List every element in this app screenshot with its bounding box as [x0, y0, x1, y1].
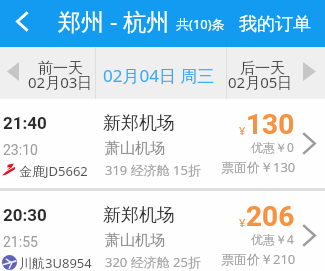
- button[interactable]: 02月04日 周三: [96, 47, 226, 99]
- staticText: 萧山机场: [105, 231, 165, 250]
- staticText: 后一天: [240, 59, 285, 78]
- staticText: 票面价￥210: [221, 250, 296, 268]
- staticText: 川航3U8954: [19, 254, 92, 271]
- staticText: ¥: [239, 215, 246, 230]
- staticText: 优惠￥0: [251, 139, 294, 155]
- staticText: 共(10)条: [176, 15, 225, 33]
- staticText: ¥: [239, 123, 246, 138]
- staticText: 319 经济舱 15折: [105, 161, 201, 179]
- staticText: 前一天: [38, 59, 83, 78]
- staticText: 郑州 - 杭州: [58, 5, 170, 36]
- staticText: 02月03日: [28, 72, 93, 92]
- button[interactable]: Back: [0, 0, 44, 47]
- button[interactable]: 21:40: [0, 99, 325, 188]
- staticText: 21:55: [3, 234, 38, 250]
- staticText: 130: [246, 108, 295, 141]
- button[interactable]: 20:30: [0, 191, 325, 271]
- staticText: 新郑机场: [103, 204, 175, 227]
- staticText: 票面价￥130: [221, 158, 296, 176]
- staticText: 优惠￥4: [251, 231, 294, 247]
- staticText: 新郑机场: [103, 112, 175, 135]
- button[interactable]: 后一天: [227, 47, 325, 99]
- button[interactable]: 我的订单: [233, 0, 317, 47]
- staticText: 21:40: [3, 113, 47, 133]
- staticText: 20:30: [3, 205, 47, 225]
- staticText: 萧山机场: [105, 139, 165, 158]
- staticText: 我的订单: [239, 13, 311, 36]
- button[interactable]: 前一天: [0, 47, 95, 99]
- staticText: 02月04日 周三: [103, 64, 215, 87]
- staticText: 02月05日: [228, 72, 293, 92]
- staticText: 金鹿JD5662: [19, 162, 88, 180]
- staticText: 320 经济舱 25折: [105, 253, 201, 271]
- staticText: 206: [246, 200, 295, 233]
- staticText: 23:10: [3, 142, 38, 158]
